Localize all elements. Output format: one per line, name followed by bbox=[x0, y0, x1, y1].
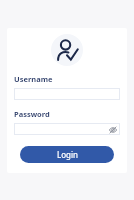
button[interactable]: Show password bbox=[108, 125, 117, 134]
staticText: Username bbox=[14, 74, 53, 84]
button[interactable] bbox=[14, 88, 120, 100]
button[interactable]: Show password bbox=[14, 123, 120, 135]
staticText: Login bbox=[57, 149, 78, 160]
staticText: Password bbox=[14, 109, 50, 119]
button[interactable]: Login bbox=[20, 146, 114, 163]
